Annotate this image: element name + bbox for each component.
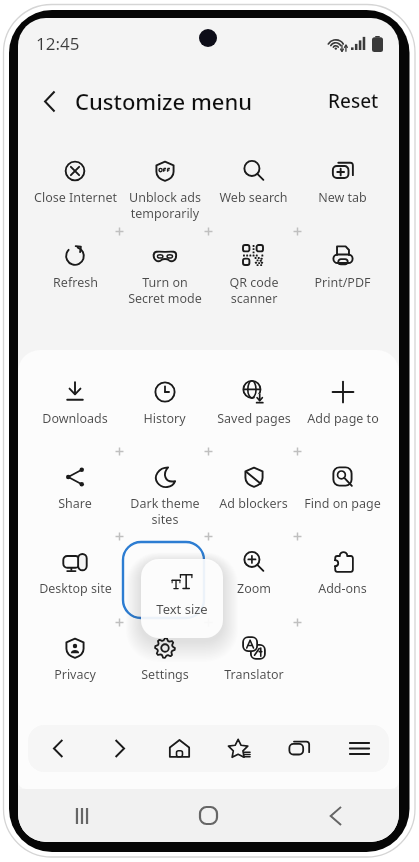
- staticText: Customize menu: [75, 86, 252, 116]
- staticText: Translator: [224, 666, 284, 683]
- staticText: Close Internet: [34, 189, 117, 206]
- staticText: Add-ons: [318, 580, 367, 597]
- staticText: Reset: [328, 88, 379, 114]
- button[interactable]: QR code scanner: [209, 231, 298, 311]
- button[interactable]: Share: [30, 452, 120, 532]
- button[interactable]: Back: [28, 725, 89, 772]
- button[interactable]: Close Internet: [30, 146, 120, 226]
- button[interactable]: Menu: [329, 725, 389, 772]
- staticText: Privacy: [54, 666, 96, 683]
- button[interactable]: Zoom: [209, 537, 298, 617]
- button[interactable]: Privacy: [30, 623, 120, 703]
- staticText: New tab: [318, 189, 367, 206]
- staticText: Add page to: [307, 410, 379, 427]
- button[interactable]: Home: [145, 789, 272, 842]
- staticText: Unblock ads temporarily: [129, 189, 201, 222]
- button[interactable]: Ad blockers: [209, 452, 298, 532]
- button[interactable]: Add-ons: [298, 537, 387, 617]
- button[interactable]: Downloads: [30, 367, 120, 447]
- button[interactable]: History: [120, 367, 209, 447]
- staticText: Share: [58, 495, 92, 512]
- staticText: Ad blockers: [219, 495, 288, 512]
- button[interactable]: Dark theme sites: [120, 452, 209, 532]
- button[interactable]: Home: [149, 725, 209, 772]
- button[interactable]: Web search: [209, 146, 298, 226]
- button[interactable]: Bookmarks: [209, 725, 269, 772]
- button[interactable]: [120, 537, 209, 617]
- staticText: Zoom: [237, 580, 271, 597]
- button[interactable]: Text size: [141, 559, 223, 638]
- button[interactable]: Translator: [209, 623, 298, 703]
- button[interactable]: Settings: [120, 623, 209, 703]
- button[interactable]: Back: [272, 789, 399, 842]
- button[interactable]: Find on page: [298, 452, 387, 532]
- button[interactable]: Add page to: [298, 367, 387, 447]
- staticText: QR code scanner: [229, 274, 279, 307]
- staticText: Find on page: [304, 495, 381, 512]
- button[interactable]: Refresh: [30, 231, 120, 311]
- button[interactable]: Print/PDF: [298, 231, 387, 311]
- staticText: Refresh: [53, 274, 98, 291]
- button[interactable]: Reset: [308, 80, 399, 122]
- staticText: Downloads: [42, 410, 108, 427]
- staticText: Dark theme sites: [130, 495, 200, 528]
- button[interactable]: Unblock ads temporarily: [120, 146, 209, 226]
- button[interactable]: Saved pages: [209, 367, 298, 447]
- staticText: Turn on Secret mode: [128, 274, 202, 307]
- button[interactable]: New tab: [298, 146, 387, 226]
- button[interactable]: Turn on Secret mode: [120, 231, 209, 311]
- button[interactable]: Desktop site: [30, 537, 120, 617]
- button[interactable]: Tabs: [269, 725, 329, 772]
- staticText: Desktop site: [39, 580, 112, 597]
- staticText: Settings: [141, 666, 189, 683]
- staticText: History: [143, 410, 186, 427]
- button[interactable]: Back: [31, 82, 69, 120]
- button[interactable]: Recents: [18, 789, 145, 842]
- staticText: Print/PDF: [314, 274, 371, 291]
- button[interactable]: Forward: [89, 725, 149, 772]
- staticText: Saved pages: [217, 410, 291, 427]
- staticText: Text size: [156, 600, 208, 618]
- staticText: Web search: [219, 189, 288, 206]
- staticText: 12:45: [36, 32, 80, 55]
